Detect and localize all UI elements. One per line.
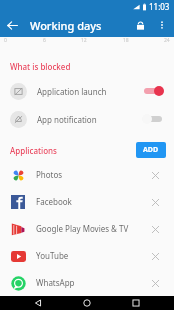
button[interactable]: ADD [136,142,166,158]
staticText: Working days [30,18,102,33]
staticText: Photos [36,169,63,180]
button[interactable]: Remove Facebook [146,193,164,211]
button[interactable]: Remove Google Play Movies & TV [146,220,164,238]
button[interactable]: WhatsApp [0,269,174,296]
button[interactable]: App notification [0,105,174,133]
staticText: 18 [123,37,129,44]
staticText: YouTube [36,250,69,261]
button[interactable]: Home [76,296,98,310]
staticText: 0 [4,37,7,44]
button[interactable]: More options [152,15,172,35]
button[interactable]: Photos [0,161,174,188]
staticText: Application launch [37,86,107,97]
staticText: Applications [10,145,57,156]
button[interactable]: Recent apps [125,296,147,310]
staticText: 24 [164,37,170,44]
button[interactable]: Remove Photos [146,166,164,184]
staticText: App notification [37,114,97,125]
button[interactable]: Google Play Movies & TV [0,215,174,242]
button[interactable]: Lock [128,13,152,37]
staticText: 6 [43,37,46,44]
staticText: Google Play Movies & TV [36,223,129,234]
button[interactable]: Remove YouTube [146,247,164,265]
button[interactable]: YouTube [0,242,174,269]
button[interactable]: Remove WhatsApp [146,274,164,292]
staticText: Facebook [36,196,72,207]
button[interactable]: Application launch [0,77,174,105]
staticText: WhatsApp [36,277,75,288]
staticText: 12 [81,37,87,44]
staticText: 11:03 [149,1,170,12]
button[interactable]: Facebook [0,188,174,215]
staticText: ADD [143,145,159,155]
button[interactable]: Back [27,296,49,310]
staticText: What is blocked [10,61,71,72]
button[interactable]: Back [0,13,24,37]
